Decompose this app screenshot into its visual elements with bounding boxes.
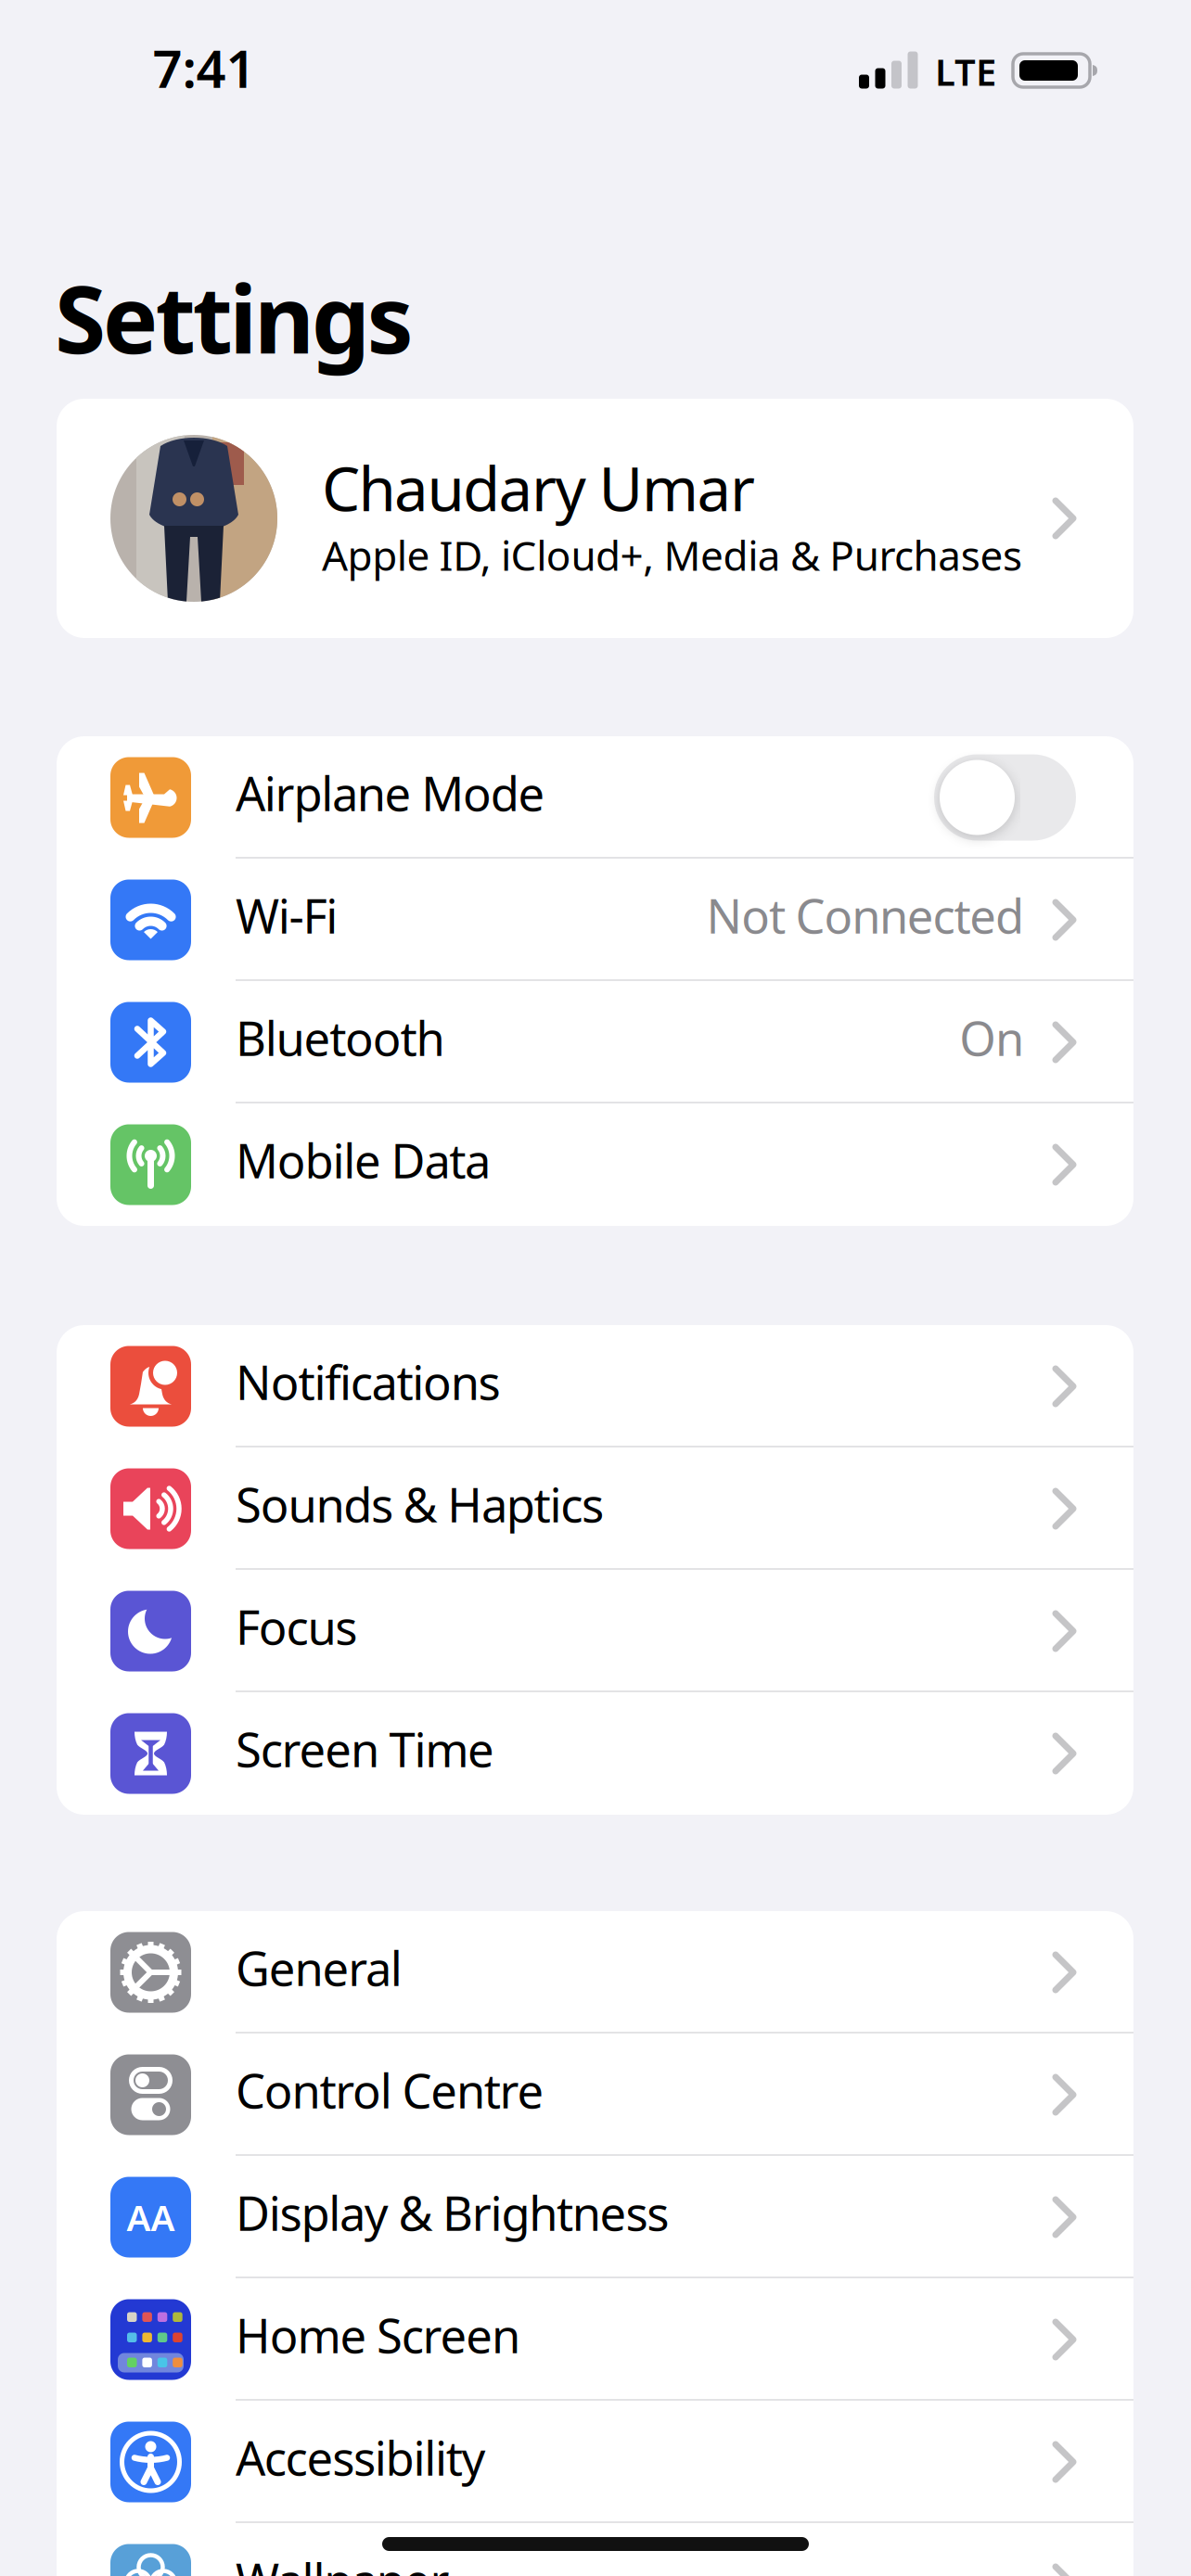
button[interactable]: Wi-Fi <box>57 859 1133 981</box>
staticText: Display & Brightness <box>236 2181 669 2244</box>
button[interactable]: AA <box>57 2156 1133 2278</box>
button[interactable]: Bluetooth <box>57 981 1133 1103</box>
staticText: Wallpaper <box>236 2549 449 2576</box>
button[interactable]: Control Centre <box>57 2034 1133 2156</box>
staticText: Home Screen <box>236 2304 520 2366</box>
button[interactable]: Accessibility <box>57 2401 1133 2523</box>
staticText: Mobile Data <box>236 1129 491 1191</box>
staticText: AA <box>127 2193 175 2241</box>
staticText: Notifications <box>236 1350 501 1413</box>
button[interactable]: Screen Time <box>57 1692 1133 1815</box>
staticText: General <box>236 1937 402 1999</box>
staticText: Not Connected <box>706 884 1024 946</box>
staticText: Sounds & Haptics <box>236 1473 604 1535</box>
staticText: Bluetooth <box>236 1006 445 1069</box>
staticText: Accessibility <box>236 2426 486 2489</box>
staticText: Control Centre <box>236 2059 544 2121</box>
button[interactable]: Home Screen <box>57 2278 1133 2401</box>
button[interactable]: Mobile Data <box>57 1103 1133 1226</box>
staticText: Airplane Mode <box>236 762 545 824</box>
button[interactable]: Sounds & Haptics <box>57 1447 1133 1570</box>
staticText: Focus <box>236 1595 357 1658</box>
button[interactable]: Chaudary Umar <box>57 399 1133 638</box>
staticText: 7:41 <box>153 33 256 102</box>
staticText: Settings <box>55 256 413 379</box>
staticText: Chaudary Umar <box>322 447 755 528</box>
button[interactable]: Airplane Mode <box>934 754 1076 841</box>
staticText: Screen Time <box>236 1718 494 1780</box>
staticText: On <box>959 1006 1024 1069</box>
staticText: Apple ID, iCloud+, Media & Purchases <box>322 528 1022 582</box>
button[interactable]: Focus <box>57 1570 1133 1692</box>
button[interactable]: General <box>57 1911 1133 2034</box>
button[interactable]: Wallpaper <box>57 2523 1133 2576</box>
staticText: LTE <box>935 47 996 96</box>
button[interactable]: Notifications <box>57 1325 1133 1447</box>
staticText: Wi-Fi <box>236 884 338 946</box>
